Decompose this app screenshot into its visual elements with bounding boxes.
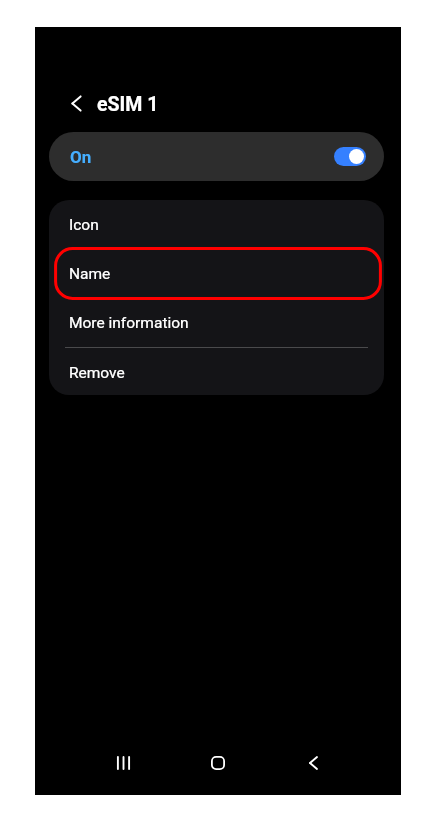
button[interactable]: Toggle eSIM [334,147,366,166]
button[interactable]: Back [290,740,336,786]
staticText: More information [69,314,189,332]
staticText: Name [69,265,111,283]
staticText: On [70,147,92,167]
staticText: Icon [69,216,99,234]
button[interactable]: Name [49,249,384,298]
button[interactable]: More information [49,298,384,347]
button[interactable]: Remove [49,348,384,395]
staticText: Remove [69,364,125,382]
button[interactable]: Back [59,88,93,122]
staticText: eSIM 1 [97,93,159,116]
button[interactable]: On [49,132,384,181]
button[interactable]: Home [195,740,241,786]
button[interactable]: Recent apps [100,740,146,786]
button[interactable]: Icon [49,200,384,249]
